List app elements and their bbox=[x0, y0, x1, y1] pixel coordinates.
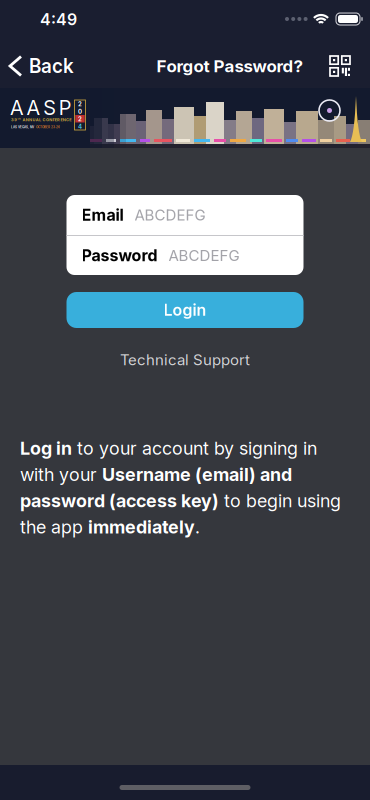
staticText: Login bbox=[163, 301, 206, 319]
staticText: 39ᵗʰ ANNUAL CONFERENCE bbox=[11, 117, 71, 122]
button[interactable]: Login bbox=[66, 292, 303, 328]
button[interactable]: Password field bbox=[66, 236, 303, 275]
staticText: password (access key) to begin using bbox=[20, 490, 341, 511]
button[interactable]: Scan QR Code bbox=[320, 46, 360, 86]
button[interactable]: Technical Support bbox=[120, 351, 250, 369]
staticText: Log in to your account by signing in bbox=[20, 438, 317, 459]
staticText: Back bbox=[29, 55, 74, 77]
button[interactable]: Email field bbox=[66, 195, 303, 235]
staticText: Forgot Password? bbox=[156, 56, 303, 76]
staticText: 0 bbox=[78, 108, 82, 115]
staticText: Email bbox=[81, 206, 123, 224]
staticText: 2 bbox=[78, 115, 82, 123]
staticText: Technical Support bbox=[120, 351, 250, 369]
button[interactable]: Back bbox=[0, 44, 74, 88]
staticText: 2 bbox=[78, 100, 82, 108]
staticText: with your Username (email) and bbox=[20, 464, 292, 485]
staticText: LAS VEGAS, NV bbox=[11, 125, 34, 129]
staticText: the app immediately. bbox=[20, 516, 200, 538]
staticText: AASP bbox=[10, 96, 72, 120]
staticText: 4 bbox=[78, 123, 82, 130]
staticText: ABCDEFG bbox=[168, 247, 239, 264]
staticText: Password bbox=[81, 246, 157, 265]
staticText: ABCDEFG bbox=[134, 206, 205, 224]
staticText: 4:49 bbox=[40, 10, 77, 29]
staticText: OCTOBER 23-26 bbox=[36, 125, 60, 129]
